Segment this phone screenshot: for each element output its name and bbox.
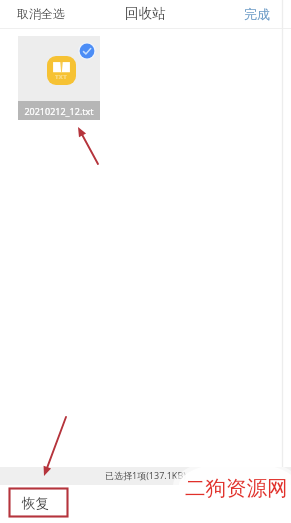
staticText: 已选择1项(137.1KB) — [105, 469, 186, 481]
staticText: 恢复 — [22, 495, 49, 512]
staticText: 20210212_12.txt — [24, 105, 94, 117]
staticText: 取消全选 — [17, 6, 65, 21]
button[interactable]: 取消全选 — [0, 1, 75, 26]
button[interactable]: TXT — [18, 36, 100, 120]
staticText: 回收站 — [125, 5, 166, 22]
button[interactable]: 恢复 — [9, 489, 67, 517]
other: Selected — [78, 42, 96, 60]
button[interactable]: 完成 — [234, 1, 291, 27]
staticText: TXT — [55, 73, 68, 81]
staticText: 二狗资源网 — [185, 475, 288, 501]
staticText: 完成 — [244, 6, 270, 22]
